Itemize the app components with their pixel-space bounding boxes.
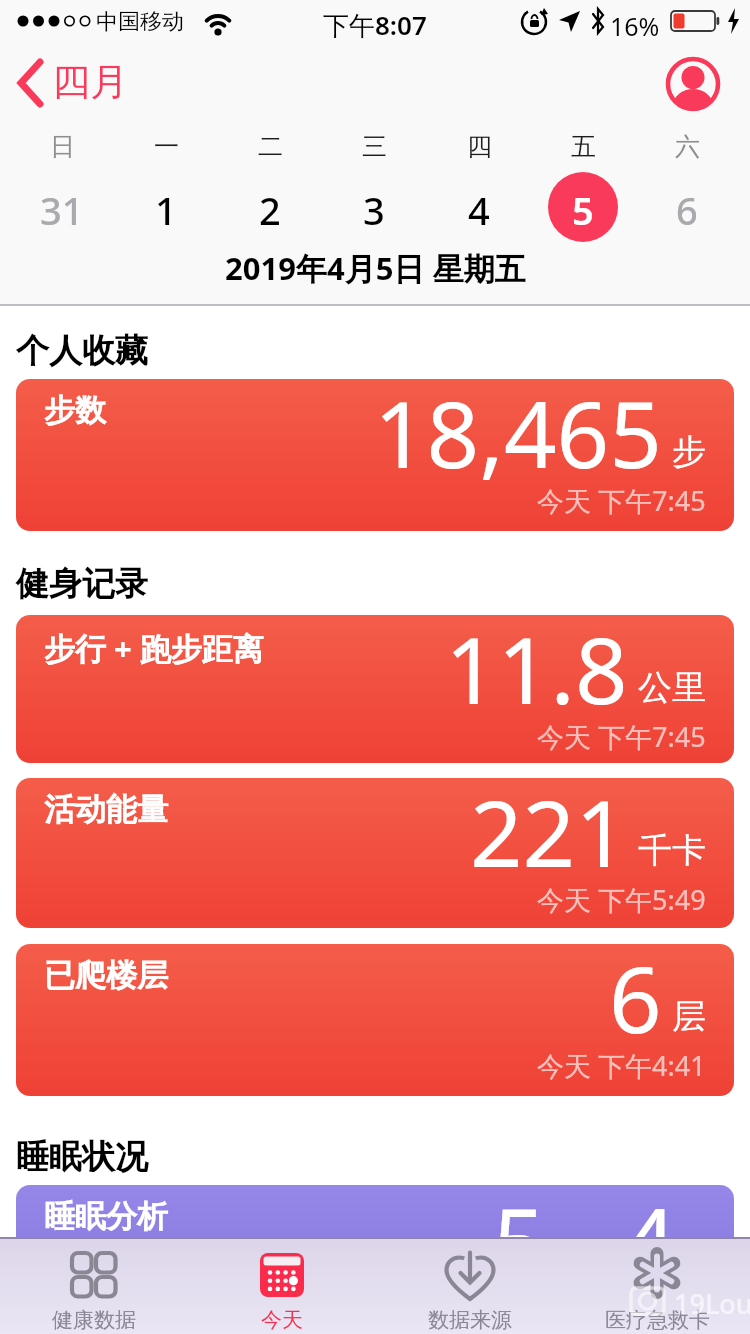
staticText: 四 [467, 131, 492, 162]
staticText: 2019年4月5日 星期五 [225, 247, 526, 289]
staticText: 已爬楼层 [44, 956, 168, 995]
button[interactable]: 四月 [10, 52, 140, 114]
staticText: 今天 [261, 1307, 303, 1333]
staticText: 健身记录 [16, 563, 148, 605]
staticText: 11.8 [445, 615, 628, 731]
button[interactable]: 步数 [16, 379, 734, 531]
staticText: 今天 下午4:41 [537, 1047, 706, 1084]
staticText: 3 [363, 184, 385, 236]
staticText: 今天 下午7:45 [537, 482, 706, 519]
staticText: 2 [259, 184, 281, 236]
staticText: 五 [571, 131, 596, 162]
staticText: 三 [362, 131, 387, 162]
staticText: 221 [470, 778, 628, 894]
staticText: 数据来源 [428, 1307, 512, 1333]
staticText: 19Lou [674, 1285, 750, 1322]
staticText: 16% [610, 9, 660, 43]
button[interactable] [665, 56, 721, 112]
staticText: 步 [672, 430, 706, 473]
staticText: 睡眠分析 [44, 1197, 168, 1236]
staticText: 中国移动 [96, 8, 184, 36]
button[interactable]: 今天 [188, 1237, 376, 1334]
staticText: 公里 [638, 666, 706, 709]
button[interactable]: 睡眠分析 [16, 1185, 734, 1334]
button[interactable] [548, 172, 618, 242]
staticText: 下午8:07 [323, 7, 427, 43]
staticText: 6 [609, 944, 662, 1060]
button[interactable]: 已爬楼层 [16, 944, 734, 1096]
staticText: 1 [155, 184, 177, 236]
staticText: 千卡 [638, 829, 706, 872]
staticText: 六 [675, 131, 700, 162]
button[interactable]: 健康数据 [0, 1237, 188, 1334]
staticText: 5 [493, 1185, 546, 1302]
staticText: 日 [50, 131, 75, 162]
staticText: 4 [623, 1185, 676, 1302]
button[interactable]: 步行 + 跑步距离 [16, 615, 734, 763]
staticText: 5 [572, 184, 594, 236]
staticText: 今天 下午7:45 [537, 718, 706, 755]
staticText: 一 [154, 131, 179, 162]
staticText: 步行 + 跑步距离 [44, 627, 264, 669]
staticText: 4 [468, 184, 490, 236]
button[interactable]: 医疗急救卡 [564, 1237, 750, 1334]
staticText: 6 [676, 184, 698, 236]
staticText: 四月 [52, 58, 128, 106]
staticText: 二 [258, 131, 283, 162]
staticText: 睡眠状况 [16, 1136, 148, 1178]
staticText: 今天 下午5:49 [537, 881, 706, 918]
button[interactable]: 数据来源 [376, 1237, 564, 1334]
button[interactable]: 活动能量 [16, 778, 734, 928]
staticText: 层 [672, 995, 706, 1038]
staticText: 医疗急救卡 [605, 1307, 710, 1333]
staticText: 31 [40, 184, 84, 236]
staticText: 18,465 [374, 379, 662, 495]
staticText: 活动能量 [44, 790, 168, 829]
staticText: 步数 [44, 391, 106, 430]
staticText: 健康数据 [52, 1307, 136, 1333]
staticText: 个人收藏 [16, 330, 148, 372]
